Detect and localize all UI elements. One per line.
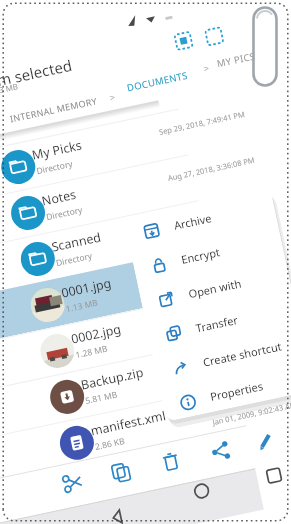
staticText: Directory bbox=[35, 158, 74, 177]
staticText: Properties bbox=[209, 378, 265, 404]
button[interactable]: Backup.zip bbox=[0, 338, 237, 445]
button[interactable]: Notes bbox=[0, 154, 198, 261]
button[interactable]: manifest.xml bbox=[0, 384, 247, 491]
staticText: Sep 29, 2018, 7:49:41 PM bbox=[158, 109, 246, 137]
staticText: 1 item selected bbox=[0, 55, 74, 97]
button[interactable] bbox=[158, 449, 184, 475]
button[interactable] bbox=[108, 459, 134, 485]
staticText: Directory bbox=[55, 250, 94, 269]
button[interactable]: My Picks bbox=[0, 108, 188, 215]
button[interactable] bbox=[190, 479, 213, 503]
staticText: 0002.jpg bbox=[69, 320, 123, 347]
button[interactable]: Encrypt bbox=[131, 221, 285, 287]
staticText: Create shortcut bbox=[201, 338, 283, 370]
staticText: 1.13 MB bbox=[0, 80, 19, 97]
staticText: My Picks bbox=[30, 136, 84, 164]
button[interactable] bbox=[262, 464, 286, 487]
staticText: 1.28 MB bbox=[74, 342, 109, 361]
staticText: MY PICS bbox=[216, 49, 257, 70]
button[interactable]: 0002.jpg bbox=[0, 292, 227, 399]
staticText: 2.86 KB bbox=[94, 435, 126, 453]
button[interactable]: Archive bbox=[123, 187, 277, 252]
staticText: Jan 01, 2009, 9:02:43 AM bbox=[211, 399, 291, 427]
staticText: Directory bbox=[45, 204, 84, 223]
button[interactable] bbox=[105, 505, 129, 524]
button[interactable]: Create shortcut bbox=[152, 324, 291, 389]
staticText: manifest.xml bbox=[89, 407, 168, 439]
staticText: 1.13 MB bbox=[65, 296, 99, 315]
button[interactable]: Properties bbox=[160, 358, 291, 422]
staticText: > bbox=[108, 90, 117, 103]
button[interactable]: Transfer bbox=[145, 290, 291, 355]
staticText: INTERNAL MEMORY bbox=[9, 94, 98, 124]
staticText: 5.81 MB bbox=[84, 388, 119, 407]
staticText: Notes bbox=[40, 186, 78, 210]
staticText: Open with bbox=[187, 275, 243, 301]
button[interactable] bbox=[173, 30, 194, 51]
button[interactable]: 0001.jpg bbox=[0, 246, 218, 353]
staticText: > bbox=[202, 61, 211, 74]
button[interactable] bbox=[208, 438, 234, 464]
button[interactable] bbox=[204, 26, 225, 47]
staticText: Scanned bbox=[50, 228, 103, 256]
button[interactable]: DOCUMENTS bbox=[126, 69, 189, 94]
staticText: Encrypt bbox=[180, 244, 222, 267]
staticText: Transfer bbox=[194, 312, 239, 335]
staticText: 0001.jpg bbox=[60, 274, 113, 302]
button[interactable]: Scanned bbox=[0, 200, 208, 307]
button[interactable] bbox=[60, 469, 86, 496]
staticText: Archive bbox=[172, 210, 214, 233]
button[interactable] bbox=[252, 429, 278, 455]
staticText: Aug 27, 2018, 3:36:08 PM bbox=[167, 155, 256, 183]
staticText: Backup.zip bbox=[79, 364, 145, 393]
button[interactable]: Open with bbox=[138, 256, 291, 321]
